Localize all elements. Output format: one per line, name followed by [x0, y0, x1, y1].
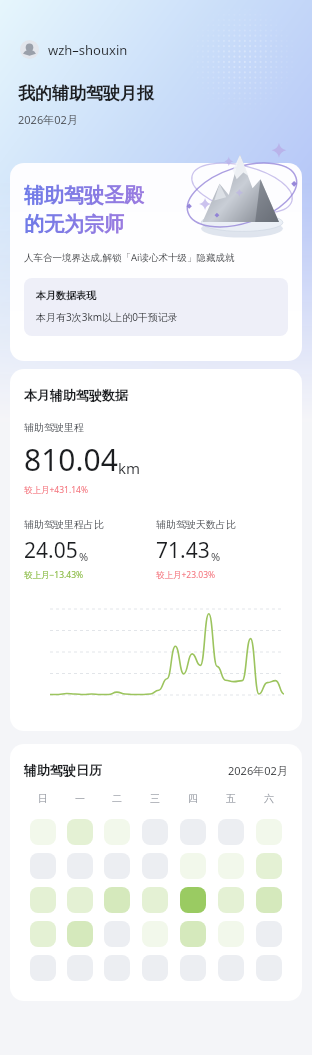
button[interactable]: 辅助驾驶圣殿 — [10, 163, 302, 361]
button[interactable] — [67, 853, 93, 879]
button[interactable] — [256, 819, 282, 845]
button[interactable] — [256, 853, 282, 879]
button[interactable] — [104, 955, 130, 981]
staticText: 辅助驾驶圣殿 — [24, 183, 144, 208]
button[interactable] — [67, 819, 93, 845]
staticText: wzh–shouxin — [48, 41, 128, 59]
staticText: 24.05 — [24, 536, 78, 565]
staticText: 日 — [38, 792, 48, 805]
button[interactable] — [256, 887, 282, 913]
button[interactable] — [30, 921, 56, 947]
staticText: 810.04 — [24, 439, 118, 480]
button[interactable]: 本月辅助驾驶数据 — [10, 369, 302, 731]
button[interactable] — [218, 955, 244, 981]
button[interactable] — [104, 819, 130, 845]
staticText: 辅助驾驶里程 — [24, 421, 84, 434]
button[interactable] — [142, 955, 168, 981]
staticText: 辅助驾驶里程占比 — [24, 518, 104, 531]
button[interactable] — [67, 887, 93, 913]
staticText: 辅助驾驶天数占比 — [156, 518, 236, 531]
button[interactable] — [30, 887, 56, 913]
button[interactable] — [104, 853, 130, 879]
staticText: km — [118, 458, 141, 478]
staticText: 我的辅助驾驶月报 — [18, 83, 154, 104]
staticText: 71.43 — [156, 536, 210, 565]
button[interactable] — [142, 819, 168, 845]
staticText: 本月有3次3km以上的0干预记录 — [36, 310, 178, 324]
staticText: 较上月+431.14% — [24, 484, 89, 496]
staticText: 人车合一境界达成,解锁「Ai读心术十级」隐藏成就 — [24, 251, 235, 264]
staticText: 的无为宗师 — [24, 212, 124, 237]
button[interactable] — [142, 887, 168, 913]
button[interactable] — [180, 819, 206, 845]
button[interactable] — [180, 921, 206, 947]
button[interactable] — [142, 921, 168, 947]
button[interactable] — [30, 819, 56, 845]
staticText: 较上月−13.43% — [24, 569, 84, 581]
button[interactable] — [218, 853, 244, 879]
button[interactable] — [180, 887, 206, 913]
button[interactable]: 本月数据表现 — [24, 278, 288, 336]
staticText: 四 — [188, 792, 198, 805]
button[interactable] — [30, 955, 56, 981]
button[interactable]: wzh–shouxin — [18, 38, 130, 61]
staticText: 五 — [226, 792, 236, 805]
button[interactable] — [142, 853, 168, 879]
button[interactable] — [218, 921, 244, 947]
staticText: 2026年02月 — [228, 763, 288, 778]
button[interactable] — [256, 921, 282, 947]
staticText: % — [79, 549, 89, 564]
staticText: 辅助驾驶日历 — [24, 762, 102, 778]
button[interactable] — [30, 853, 56, 879]
button[interactable] — [67, 955, 93, 981]
staticText: 一 — [75, 792, 85, 805]
button[interactable] — [218, 887, 244, 913]
button[interactable] — [218, 819, 244, 845]
staticText: 二 — [112, 792, 122, 805]
staticText: 六 — [264, 792, 274, 805]
staticText: 2026年02月 — [18, 112, 78, 127]
button[interactable] — [180, 853, 206, 879]
staticText: 较上月+23.03% — [156, 569, 216, 581]
button[interactable] — [104, 887, 130, 913]
button[interactable] — [67, 921, 93, 947]
staticText: 本月辅助驾驶数据 — [24, 387, 128, 403]
staticText: % — [211, 549, 221, 564]
staticText: 三 — [150, 792, 160, 805]
button[interactable] — [256, 955, 282, 981]
button[interactable] — [180, 955, 206, 981]
button[interactable]: 辅助驾驶日历 — [10, 744, 302, 1001]
button[interactable] — [104, 921, 130, 947]
staticText: 本月数据表现 — [36, 289, 96, 302]
